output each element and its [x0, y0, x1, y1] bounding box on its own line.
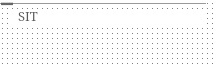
- staticText: SIT: [18, 7, 38, 25]
